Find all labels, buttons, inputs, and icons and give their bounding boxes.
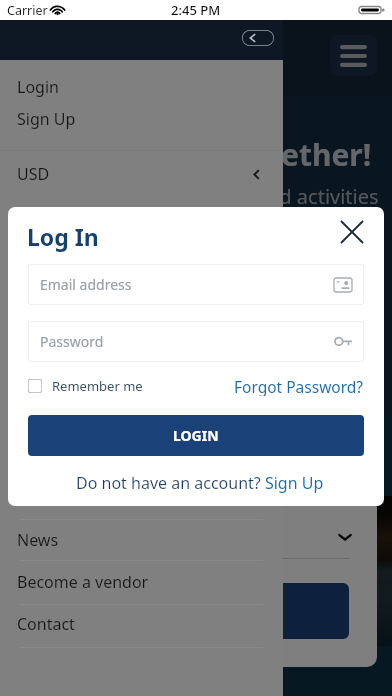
staticText: Log In: [27, 221, 99, 252]
button[interactable]: LOGIN: [28, 415, 364, 456]
button[interactable]: Password: [28, 321, 364, 362]
button[interactable]: Contact: [0, 603, 283, 645]
staticText: Find the best tours and activities: [74, 183, 379, 210]
staticText: Carrier: [7, 2, 48, 19]
button[interactable]: News: [0, 519, 283, 561]
staticText: USD: [17, 163, 50, 185]
staticText: Sign Up: [17, 108, 76, 130]
button[interactable]: Forgot Password?: [234, 373, 364, 399]
button[interactable]: Close: [334, 214, 370, 250]
button[interactable]: Become a vendor: [0, 561, 283, 603]
button[interactable]: Menu: [330, 35, 377, 76]
staticText: Remember me: [52, 377, 143, 395]
button[interactable]: Email address: [28, 264, 364, 305]
staticText: News: [17, 529, 59, 551]
button[interactable]: Login: [0, 66, 283, 108]
button[interactable]: Remember me: [28, 373, 143, 399]
staticText: LOGIN: [173, 426, 219, 445]
button[interactable]: Do not have an account? Sign Up: [76, 472, 324, 494]
staticText: Forgot Password?: [234, 376, 364, 396]
staticText: Contact: [17, 613, 75, 635]
button[interactable]: [29, 583, 349, 639]
staticText: 2:45 PM: [171, 1, 221, 19]
staticText: Email address: [40, 275, 132, 294]
button[interactable]: Sign Up: [0, 98, 283, 140]
staticText: Login: [17, 76, 59, 98]
staticText: Become a vendor: [17, 571, 149, 593]
staticText: Password: [40, 332, 104, 351]
button[interactable]: Back: [242, 30, 274, 46]
staticText: Let's ride together!: [85, 134, 372, 175]
button[interactable]: USD: [0, 153, 283, 195]
